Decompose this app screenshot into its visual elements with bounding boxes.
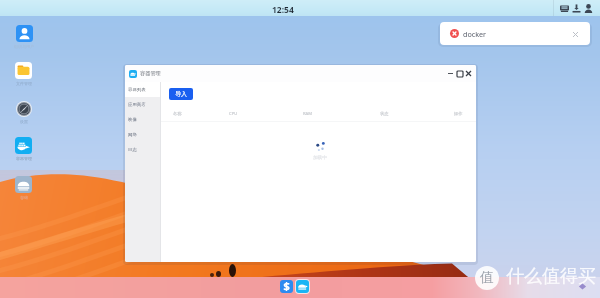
button[interactable]: Account xyxy=(584,4,593,13)
staticText: 什么值得买 xyxy=(506,265,596,288)
button[interactable]: 容器列表 xyxy=(125,82,161,97)
staticText: docker xyxy=(463,29,487,39)
staticText: 设置 xyxy=(20,119,28,124)
button[interactable]: Maximize xyxy=(455,69,464,78)
staticText: RAM xyxy=(303,111,313,117)
button[interactable]: 设置 xyxy=(8,100,39,124)
button[interactable]: 容器管理 xyxy=(8,137,39,161)
button[interactable]: 文件管理 xyxy=(8,62,39,86)
staticText: CPU xyxy=(229,111,238,117)
button[interactable]: Close xyxy=(464,69,473,78)
staticText: 加载中 xyxy=(313,155,327,161)
button[interactable]: Download xyxy=(572,4,581,13)
staticText: 网络 xyxy=(128,132,137,138)
button[interactable]: 导入 xyxy=(169,88,193,100)
staticText: 组织与用户 xyxy=(14,44,34,49)
button[interactable]: 存储 xyxy=(8,176,39,200)
button[interactable]: Storage app xyxy=(280,280,293,293)
staticText: 应用商店 xyxy=(128,102,146,108)
button[interactable]: 映像 xyxy=(125,112,161,127)
staticText: 映像 xyxy=(128,117,137,123)
staticText: 日志 xyxy=(128,147,137,153)
staticText: 操作 xyxy=(454,111,463,116)
staticText: 值 xyxy=(480,269,494,287)
button[interactable]: 组织与用户 xyxy=(8,25,39,49)
button[interactable]: 应用商店 xyxy=(125,97,161,112)
button[interactable]: Close xyxy=(570,29,580,39)
button[interactable]: Display xyxy=(560,4,569,13)
button[interactable]: 日志 xyxy=(125,142,161,157)
button[interactable]: 网络 xyxy=(125,127,161,142)
staticText: 12:54 xyxy=(272,4,294,16)
button[interactable]: Minimize xyxy=(446,69,455,78)
staticText: 容器列表 xyxy=(128,87,146,93)
staticText: 状态 xyxy=(380,111,389,116)
button[interactable]: Container manager xyxy=(296,280,309,293)
staticText: 文件管理 xyxy=(16,81,32,86)
staticText: 名称 xyxy=(173,111,182,116)
staticText: 导入 xyxy=(175,90,187,98)
staticText: 容器管理 xyxy=(140,70,161,77)
staticText: 存储 xyxy=(20,195,28,200)
staticText: 容器管理 xyxy=(16,156,32,161)
